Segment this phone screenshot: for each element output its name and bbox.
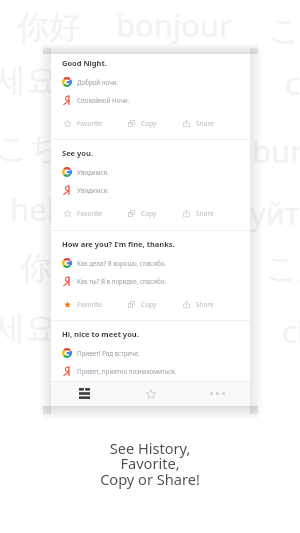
staticText: hello bbox=[10, 188, 82, 230]
staticText: Share bbox=[196, 209, 214, 218]
staticText: How are you? I'm fine, thanks. bbox=[62, 239, 175, 249]
staticText: 你好 bbox=[17, 7, 81, 47]
button[interactable]: Share bbox=[182, 298, 214, 310]
button[interactable]: Share bbox=[182, 117, 214, 129]
staticText: ciao bbox=[285, 62, 300, 104]
staticText: Copy bbox=[141, 119, 157, 128]
staticText: Привет, приятно познакомиться. bbox=[77, 367, 177, 375]
staticText: Copy bbox=[141, 300, 157, 309]
staticText: bonjour bbox=[116, 4, 232, 46]
staticText: 세요 bbox=[0, 60, 58, 100]
staticText: Привет! Рад встрече. bbox=[77, 349, 140, 357]
staticText: こんにちは bbox=[265, 248, 300, 288]
staticText: Favorite bbox=[77, 119, 102, 128]
staticText: Favorite bbox=[77, 209, 102, 218]
button[interactable]: Share bbox=[182, 207, 214, 219]
staticText: Hi, nice to meet you. bbox=[62, 329, 139, 339]
button[interactable]: Copy bbox=[127, 207, 157, 219]
staticText: See History, Favorite, Copy or Share! bbox=[100, 438, 200, 490]
button[interactable]: Copy bbox=[127, 298, 157, 310]
staticText: Share bbox=[196, 300, 214, 309]
staticText: уйте bbox=[250, 192, 300, 234]
staticText: Увидимся. bbox=[77, 168, 109, 176]
button[interactable]: Favorite bbox=[63, 117, 102, 129]
staticText: Good Night. bbox=[62, 58, 107, 68]
staticText: Favorite bbox=[77, 300, 102, 309]
staticText: Спокойной Ночи. bbox=[77, 96, 130, 104]
staticText: Увидимся. bbox=[77, 186, 109, 194]
button[interactable]: Favorite bbox=[63, 207, 102, 219]
staticText: ciao bbox=[282, 310, 300, 352]
button[interactable]: Favorite bbox=[63, 298, 102, 310]
button[interactable]: More options bbox=[184, 381, 250, 406]
staticText: Как дела? Я хорошо, спасибо. bbox=[77, 259, 167, 267]
staticText: Доброй ночи. bbox=[77, 78, 119, 86]
staticText: See you. bbox=[62, 148, 93, 158]
staticText: 你好 bbox=[20, 248, 84, 288]
button[interactable]: Favorites bbox=[118, 381, 184, 406]
staticText: Как ты? Я в порядке, спасибо. bbox=[77, 277, 167, 285]
staticText: こちら bbox=[0, 128, 95, 168]
staticText: こんにちは bbox=[268, 10, 300, 50]
staticText: Share bbox=[196, 119, 214, 128]
button[interactable]: History bbox=[51, 381, 118, 406]
staticText: 세요 bbox=[0, 308, 57, 348]
button[interactable]: Copy bbox=[127, 117, 157, 129]
staticText: Copy bbox=[141, 209, 157, 218]
staticText: bună bbox=[252, 130, 300, 172]
